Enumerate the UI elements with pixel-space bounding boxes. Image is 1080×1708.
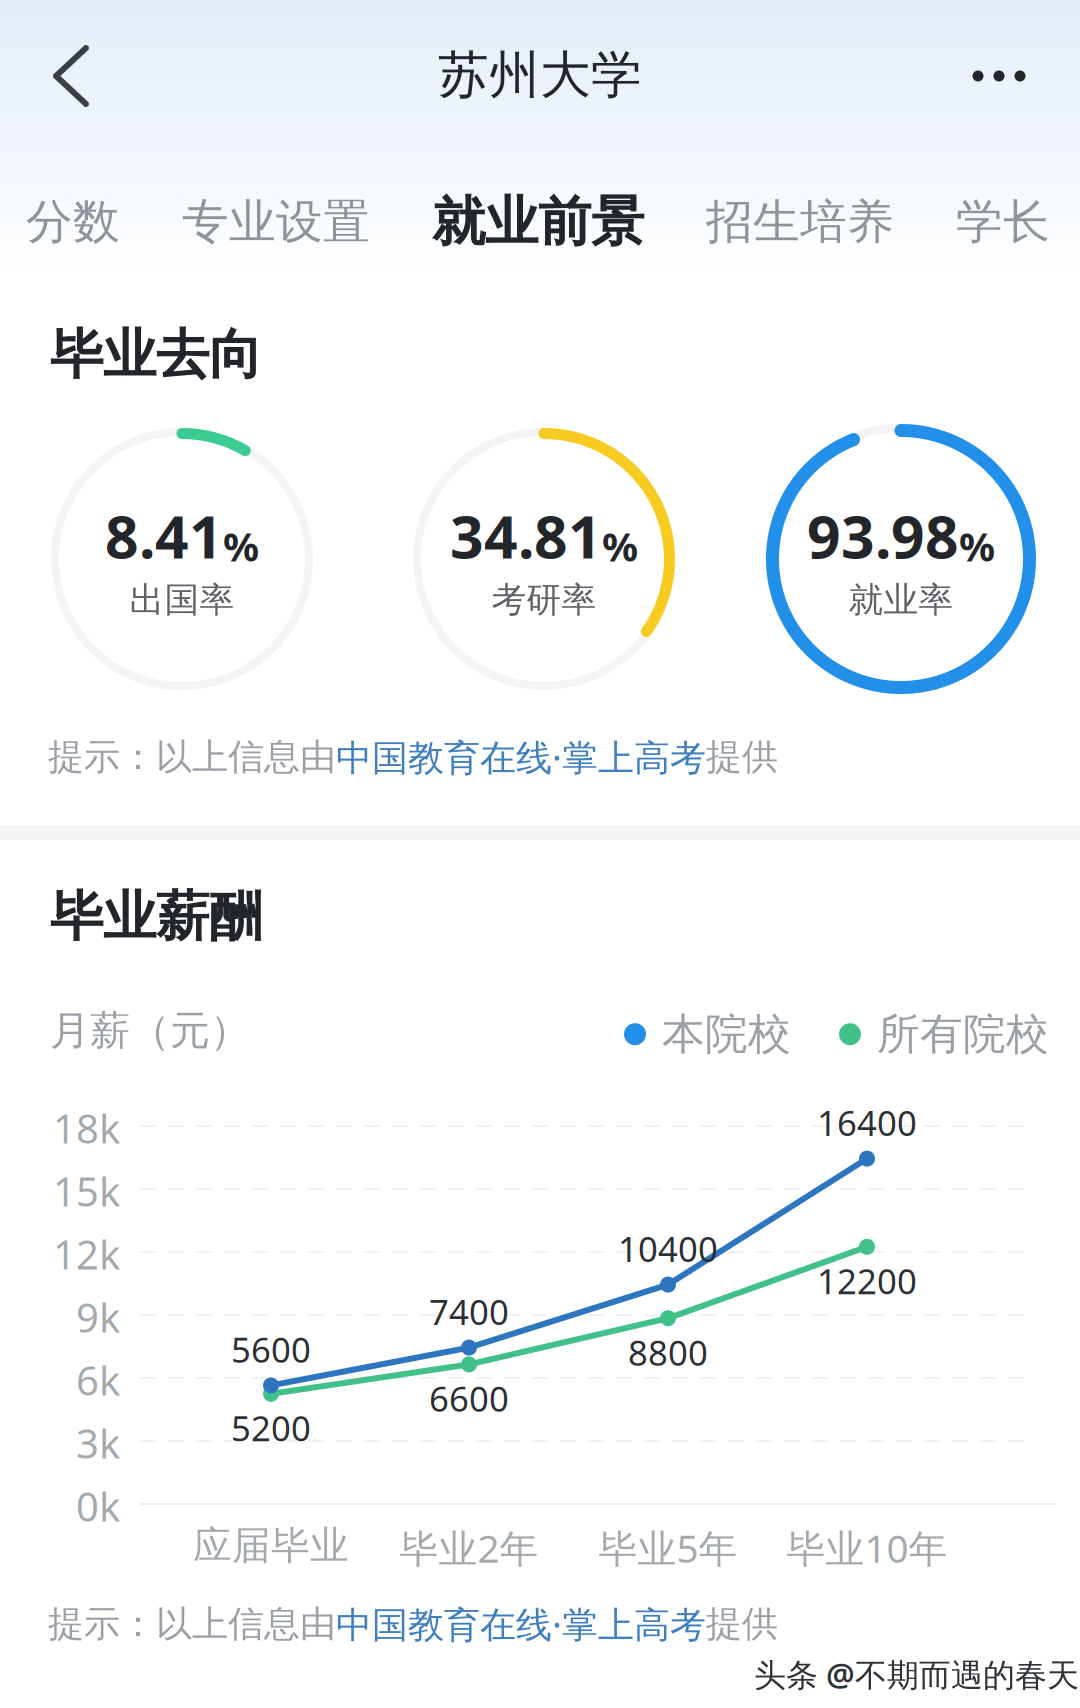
- staticText: 0k: [76, 1479, 120, 1532]
- staticText: 应届毕业: [193, 1522, 349, 1569]
- staticText: 3k: [76, 1416, 120, 1469]
- button[interactable]: 就业前景: [401, 166, 675, 278]
- staticText: 中国教育在线·掌上高考: [336, 733, 706, 781]
- staticText: 出国率: [129, 579, 234, 621]
- staticText: 8800: [628, 1329, 708, 1375]
- staticText: 12200: [817, 1258, 917, 1304]
- staticText: %: [223, 519, 259, 573]
- button[interactable]: 专业设置: [151, 166, 401, 278]
- staticText: 分数: [26, 193, 120, 251]
- staticText: 16400: [817, 1100, 917, 1146]
- staticText: 提供: [706, 735, 778, 779]
- button[interactable]: 返回: [29, 34, 113, 118]
- staticText: 提供: [706, 1602, 778, 1646]
- staticText: 专业设置: [182, 193, 370, 251]
- staticText: 93.98: [807, 497, 959, 575]
- staticText: 10400: [618, 1226, 718, 1272]
- staticText: %: [602, 519, 638, 573]
- button[interactable]: 更多: [951, 36, 1047, 116]
- staticText: 5600: [231, 1326, 311, 1372]
- staticText: 毕业5年: [598, 1522, 737, 1573]
- staticText: 提示：以上信息由: [48, 735, 336, 779]
- staticText: 毕业去向: [50, 322, 262, 387]
- staticText: 毕业薪酬: [50, 884, 262, 949]
- staticText: 9k: [76, 1290, 120, 1343]
- staticText: 所有院校: [877, 1008, 1049, 1060]
- staticText: 6600: [429, 1375, 509, 1421]
- staticText: 苏州大学: [438, 44, 642, 106]
- staticText: 就业前景: [432, 189, 644, 255]
- staticText: 中国教育在线·掌上高考: [336, 1600, 706, 1648]
- staticText: 毕业10年: [786, 1522, 947, 1573]
- staticText: 15k: [53, 1164, 120, 1217]
- staticText: 毕业2年: [399, 1522, 538, 1573]
- staticText: 34.81: [450, 497, 602, 575]
- staticText: 5200: [231, 1405, 311, 1451]
- staticText: 招生培养: [706, 193, 894, 251]
- button[interactable]: 学长: [925, 166, 1080, 278]
- button[interactable]: 招生培养: [675, 166, 925, 278]
- staticText: 头条 @不期而遇的春天: [754, 1653, 1079, 1695]
- staticText: %: [959, 519, 995, 573]
- button[interactable]: 分数: [0, 166, 151, 278]
- staticText: 18k: [53, 1101, 120, 1154]
- staticText: 12k: [53, 1227, 120, 1280]
- staticText: 8.41: [105, 497, 223, 575]
- staticText: 月薪（元）: [50, 1006, 250, 1055]
- staticText: 6k: [76, 1353, 120, 1406]
- staticText: 本院校: [662, 1008, 791, 1060]
- staticText: 考研率: [491, 579, 596, 621]
- staticText: 就业率: [848, 579, 953, 621]
- staticText: 提示：以上信息由: [48, 1602, 336, 1646]
- staticText: 7400: [429, 1289, 509, 1335]
- staticText: 学长: [956, 193, 1050, 251]
